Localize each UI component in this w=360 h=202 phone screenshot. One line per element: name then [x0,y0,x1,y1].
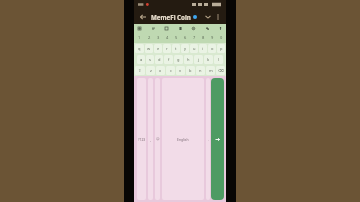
button[interactable]: x [156,66,165,75]
staticText: ?123 [138,137,146,142]
staticText: k [207,57,210,62]
staticText: a [140,57,143,62]
button[interactable]: 3 [154,33,162,42]
staticText: MemeFi Coin [151,13,191,21]
staticText: b [189,68,192,73]
button[interactable]: l [214,55,223,64]
staticText: n [199,68,202,73]
staticText: t [175,46,177,51]
staticText: 8 [202,35,205,40]
button[interactable]: ⌫ [216,66,225,75]
button[interactable]: n [196,66,205,75]
button[interactable]: e [154,44,162,53]
button[interactable]: k [204,55,213,64]
button[interactable]: d [155,55,163,64]
button[interactable]: 8 [199,33,207,42]
button[interactable]: p [217,44,225,53]
button[interactable]: 0 [217,33,225,42]
button[interactable]: Key tool 1 [151,26,156,31]
staticText: . [208,137,209,142]
staticText: 0 [220,35,223,40]
button[interactable]: Expand [202,11,213,22]
button[interactable]: Key tool 3 [178,26,183,31]
staticText: 1 [138,35,141,40]
button[interactable]: Key tool 2 [164,26,169,31]
staticText: r [166,46,168,51]
button[interactable]: y [181,44,189,53]
button[interactable]: a [137,55,145,64]
staticText: w [147,46,151,51]
button[interactable]: Key tool 4 [191,26,196,31]
staticText: , [150,137,151,142]
button[interactable]: Key tool 0 [137,26,142,31]
button[interactable]: ?123 [137,78,146,200]
staticText: ⌫ [218,68,224,73]
staticText: 7 [193,35,196,40]
button[interactable]: w [145,44,153,53]
button[interactable]: h [184,55,193,64]
button[interactable]: More options [213,12,223,22]
staticText: o [211,46,214,51]
staticText: e [157,46,160,51]
button[interactable]: t [172,44,180,53]
button[interactable]: o [208,44,216,53]
button[interactable]: v [176,66,185,75]
button[interactable]: r [163,44,171,53]
staticText: i [202,46,204,51]
staticText: l [218,57,220,62]
button[interactable]: 2 [145,33,153,42]
staticText: z [150,68,152,73]
staticText: x [159,68,162,73]
staticText: y [184,46,187,51]
button[interactable]: Key tool 6 [218,26,223,31]
button[interactable]: c [166,66,175,75]
button[interactable]: g [174,55,183,64]
staticText: u [193,46,196,51]
button[interactable]: f [164,55,173,64]
button[interactable]: 1 [135,33,144,42]
button[interactable]: 6 [181,33,189,42]
staticText: f [168,57,170,62]
staticText: m [209,68,213,73]
button[interactable]: 7 [190,33,198,42]
button[interactable]: s [146,55,154,64]
staticText: 4 [166,35,169,40]
button[interactable]: 4 [163,33,171,42]
button[interactable]: q [135,44,144,53]
staticText: 6 [184,35,187,40]
staticText: q [138,46,141,51]
staticText: s [149,57,151,62]
staticText: j [198,57,200,62]
button[interactable]: j [194,55,203,64]
button[interactable]: 5 [172,33,180,42]
button[interactable]: i [199,44,207,53]
staticText: h [187,57,190,62]
button[interactable]: Enter [211,78,224,200]
staticText: 5 [175,35,178,40]
button[interactable]: 9 [208,33,216,42]
staticText: 3 [157,35,160,40]
staticText: ☺ [156,137,160,141]
button[interactable]: z [146,66,155,75]
staticText: 2 [148,35,151,40]
button[interactable]: Back [137,11,148,22]
staticText: 9 [211,35,214,40]
button[interactable]: ⇧ [135,66,145,75]
button[interactable]: u [190,44,198,53]
staticText: p [220,46,223,51]
button[interactable]: ☺ [155,78,160,200]
staticText: c [170,68,172,73]
button[interactable]: Key tool 5 [205,26,210,31]
staticText: d [158,57,161,62]
staticText: ⇧ [138,68,142,73]
button[interactable]: b [186,66,195,75]
button[interactable]: m [206,66,215,75]
staticText: v [179,68,182,73]
staticText: English [177,137,189,142]
staticText: g [177,57,180,62]
button[interactable]: English [162,78,204,200]
